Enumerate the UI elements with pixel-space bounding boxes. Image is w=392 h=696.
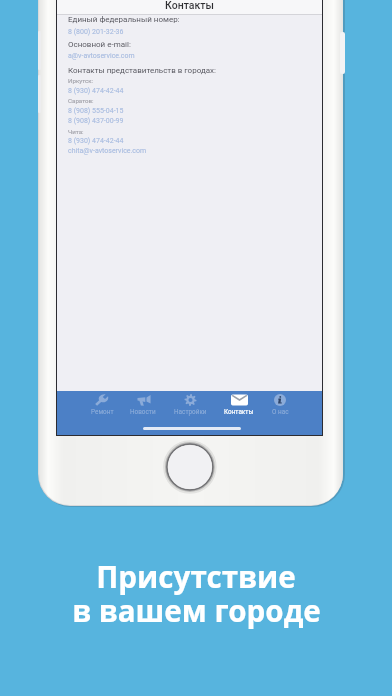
staticText: Настройки bbox=[174, 408, 207, 416]
staticText: 8 (930) 474-42-44 bbox=[68, 87, 124, 95]
staticText: 8 (908) 555-04-15 bbox=[68, 107, 124, 115]
button[interactable]: Ремонт bbox=[80, 391, 124, 421]
button[interactable]: Новости bbox=[121, 391, 165, 421]
staticText: в вашем городе bbox=[72, 590, 321, 630]
staticText: chita@v-avtoservice.com bbox=[68, 147, 147, 155]
staticText: Ремонт bbox=[91, 408, 114, 416]
staticText: 8 (800) 201-32-36 bbox=[68, 28, 124, 36]
button[interactable]: Контакты bbox=[217, 391, 261, 421]
staticText: Присутствие bbox=[96, 556, 296, 596]
staticText: Иркутск: bbox=[68, 77, 93, 84]
staticText: a@v-avtoservice.com bbox=[68, 52, 135, 60]
button[interactable]: Настройки bbox=[168, 391, 212, 421]
staticText: Контакты представительств в городах: bbox=[68, 66, 217, 75]
staticText: 8 (908) 437-00-99 bbox=[68, 117, 124, 125]
staticText: О нас bbox=[272, 408, 289, 416]
button[interactable]: О нас bbox=[258, 391, 302, 421]
staticText: Саратов: bbox=[68, 97, 94, 104]
staticText: Единый федеральный номер: bbox=[68, 15, 180, 24]
staticText: Основной e-mail: bbox=[68, 40, 131, 49]
staticText: Контакты bbox=[57, 0, 322, 11]
staticText: 8 (930) 474-42-44 bbox=[68, 137, 124, 145]
staticText: Контакты bbox=[224, 408, 254, 416]
staticText: Новости bbox=[130, 408, 156, 416]
staticText: Чита: bbox=[68, 128, 84, 135]
